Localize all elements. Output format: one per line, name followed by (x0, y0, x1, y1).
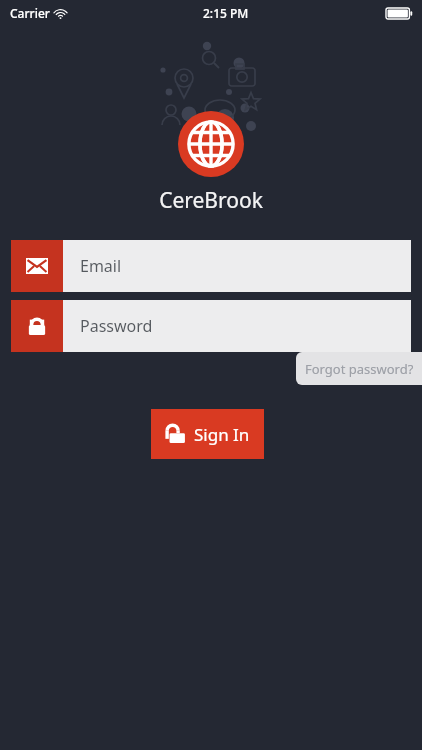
staticText: Email (80, 255, 122, 277)
staticText: Sign In (194, 423, 250, 446)
staticText: 2:15 PM (203, 5, 249, 21)
staticText: Password (80, 315, 153, 337)
button[interactable]: Email (11, 240, 411, 292)
staticText: Forgot password? (305, 360, 414, 378)
button[interactable]: Password (11, 300, 411, 352)
button[interactable]: Sign In (151, 409, 264, 459)
staticText: CereBrook (159, 186, 263, 212)
other: Email (11, 240, 63, 292)
button[interactable]: Forgot password? (296, 352, 422, 385)
other: Password (11, 300, 63, 352)
staticText: Carrier (10, 5, 50, 21)
